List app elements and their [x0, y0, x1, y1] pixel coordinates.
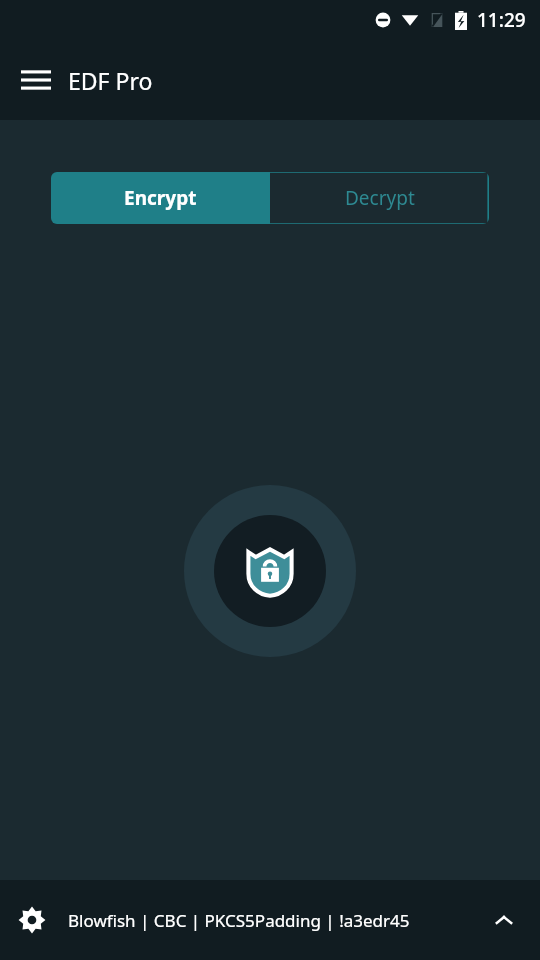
button[interactable]: Expand settings: [480, 896, 528, 944]
staticText: Encrypt: [124, 185, 197, 211]
staticText: 11:29: [477, 7, 526, 33]
staticText: Decrypt: [345, 185, 415, 211]
staticText: Blowfish | CBC | PKCS5Padding | !a3edr45: [68, 909, 480, 932]
button[interactable]: Settings: [0, 880, 540, 960]
button[interactable]: Encrypt: [51, 172, 270, 224]
button[interactable]: Encrypt file: [184, 485, 356, 657]
button[interactable]: Decrypt: [270, 172, 489, 224]
button[interactable]: Settings: [8, 896, 56, 944]
staticText: EDF Pro: [68, 65, 153, 96]
button[interactable]: Open navigation menu: [8, 52, 64, 108]
